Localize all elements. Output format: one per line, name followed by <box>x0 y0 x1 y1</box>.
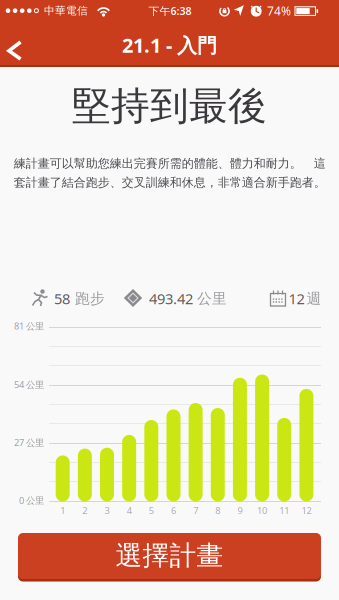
staticText: 7 <box>193 504 198 517</box>
staticText: 11 <box>279 504 289 517</box>
staticText: 10 <box>257 504 267 517</box>
staticText: 8 <box>215 504 220 517</box>
staticText: 6 <box>171 504 176 517</box>
staticText: 1 <box>60 504 65 517</box>
staticText: 跑步 <box>75 289 105 307</box>
staticText: 493.42 <box>149 289 193 308</box>
staticText: 0 公里 <box>19 494 44 506</box>
staticText: 練計畫可以幫助您練出完賽所需的體能、體力和耐力。 這 套計畫了結合跑步、交叉訓練… <box>13 156 325 190</box>
staticText: 74% <box>267 3 291 19</box>
staticText: 9 <box>237 504 242 517</box>
staticText: 12 <box>301 504 311 517</box>
staticText: 4 <box>127 504 132 517</box>
staticText: 27 公里 <box>14 436 44 449</box>
staticText: 5 <box>149 504 154 517</box>
staticText: 81 公里 <box>14 320 44 332</box>
staticText: 12 <box>288 289 304 308</box>
staticText: 選擇計畫 <box>115 539 223 572</box>
button[interactable]: 選擇計畫 <box>18 532 321 580</box>
staticText: 公里 <box>197 289 227 307</box>
staticText: 週 <box>306 289 321 307</box>
staticText: 下午6:38 <box>148 4 191 18</box>
staticText: 中華電信 <box>44 4 88 17</box>
button[interactable] <box>0 32 38 70</box>
staticText: 58 <box>54 289 70 308</box>
staticText: 21.1 - 入門 <box>122 32 217 58</box>
staticText: 54 公里 <box>14 378 44 391</box>
staticText: 3 <box>104 504 109 517</box>
staticText: 堅持到最後 <box>72 82 267 130</box>
staticText: 2 <box>82 504 87 517</box>
